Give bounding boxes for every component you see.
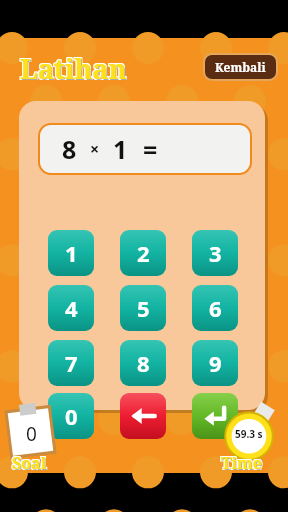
staticText: Time	[222, 452, 264, 474]
staticText: Time	[221, 451, 263, 473]
staticText: 2	[137, 238, 150, 268]
button[interactable]: 8	[120, 340, 166, 386]
staticText: Latihan	[19, 49, 126, 86]
staticText: 0	[26, 421, 37, 447]
staticText: Time	[220, 452, 262, 474]
staticText: 0	[65, 401, 78, 431]
button[interactable]: 3	[192, 230, 238, 276]
staticText: Latihan	[21, 51, 128, 88]
button[interactable]: Enter	[192, 393, 238, 439]
staticText: 6	[209, 293, 222, 323]
staticText: Soal	[13, 453, 48, 475]
staticText: 7	[65, 348, 78, 378]
staticText: 1	[113, 132, 128, 166]
staticText: ×	[90, 138, 100, 160]
staticText: Soal	[13, 451, 48, 473]
staticText: Kembali	[215, 59, 266, 75]
staticText: Time	[222, 451, 264, 473]
staticText: Soal	[12, 453, 47, 475]
staticText: =	[143, 132, 158, 166]
staticText: 5	[137, 293, 150, 323]
button[interactable]: Kembali	[205, 55, 276, 79]
button[interactable]: 1	[48, 230, 94, 276]
staticText: Soal	[12, 452, 47, 474]
staticText: 59.3 s	[235, 427, 263, 441]
staticText: Latihan	[21, 51, 128, 88]
staticText: Latihan	[21, 49, 128, 86]
staticText: Time	[220, 453, 262, 475]
staticText: Time	[220, 451, 262, 473]
staticText: 1	[65, 238, 78, 268]
button[interactable]: 0	[48, 393, 94, 439]
staticText: Soal	[13, 453, 48, 475]
staticText: Time	[222, 453, 264, 475]
staticText: 8	[62, 132, 77, 166]
staticText: Latihan	[21, 50, 128, 87]
button[interactable]: Backspace	[120, 393, 166, 439]
button[interactable]: 2	[120, 230, 166, 276]
staticText: Soal	[11, 453, 46, 475]
staticText: Time	[221, 452, 263, 474]
staticText: Time	[221, 453, 263, 475]
button[interactable]: 6	[192, 285, 238, 331]
staticText: Time	[222, 453, 264, 475]
button[interactable]: 7	[48, 340, 94, 386]
staticText: 9	[209, 348, 222, 378]
staticText: Latihan	[20, 49, 127, 86]
staticText: 8	[137, 348, 150, 378]
staticText: Latihan	[19, 50, 126, 87]
button[interactable]: 4	[48, 285, 94, 331]
staticText: Soal	[11, 452, 46, 474]
staticText: 3	[209, 238, 222, 268]
staticText: Soal	[13, 452, 48, 474]
staticText: Soal	[11, 451, 46, 473]
button[interactable]: 9	[192, 340, 238, 386]
staticText: Latihan	[20, 50, 127, 87]
staticText: 4	[65, 293, 78, 323]
staticText: Latihan	[19, 51, 126, 88]
staticText: Latihan	[20, 51, 127, 88]
button[interactable]: 5	[120, 285, 166, 331]
staticText: Soal	[12, 451, 47, 473]
